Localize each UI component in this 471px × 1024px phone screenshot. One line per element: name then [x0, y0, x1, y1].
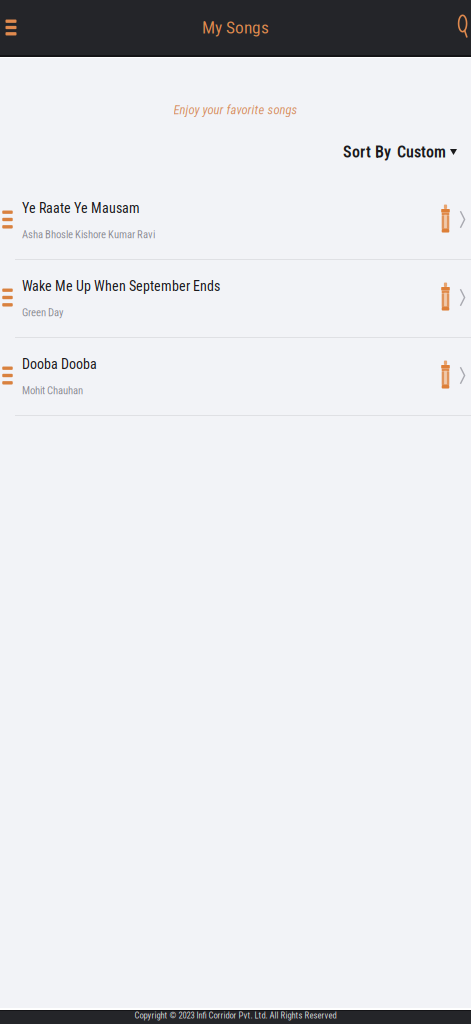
- staticText: Dooba Dooba: [22, 356, 97, 372]
- button[interactable]: Search: [446, 0, 470, 56]
- button[interactable]: Open Dooba Dooba: [455, 338, 470, 415]
- staticText: Asha Bhosle Kishore Kumar Ravi: [22, 228, 155, 241]
- button[interactable]: Delete Dooba Dooba: [430, 338, 455, 415]
- staticText: Enjoy your favorite songs: [173, 103, 297, 117]
- staticText: Green Day: [22, 306, 63, 319]
- staticText: My Songs: [202, 17, 269, 38]
- button[interactable]: Delete Wake Me Up When September Ends: [430, 260, 455, 337]
- button[interactable]: Sort order: Custom: [391, 143, 457, 161]
- button[interactable]: Open Ye Raate Ye Mausam: [455, 182, 470, 259]
- staticText: Sort By: [343, 143, 391, 161]
- button[interactable]: Delete Ye Raate Ye Mausam: [430, 182, 455, 259]
- button[interactable]: Menu: [0, 0, 22, 56]
- button[interactable]: Reorder Ye Raate Ye Mausam: [0, 182, 15, 259]
- button[interactable]: Reorder Wake Me Up When September Ends: [0, 260, 15, 337]
- staticText: Copyright © 2023 Infi Corridor Pvt. Ltd.…: [134, 1010, 336, 1021]
- button[interactable]: Reorder Dooba Dooba: [0, 338, 15, 415]
- staticText: Ye Raate Ye Mausam: [22, 200, 140, 216]
- staticText: Wake Me Up When September Ends: [22, 278, 220, 294]
- staticText: Mohit Chauhan: [22, 384, 83, 397]
- button[interactable]: Open Wake Me Up When September Ends: [455, 260, 470, 337]
- staticText: Custom: [397, 143, 446, 161]
